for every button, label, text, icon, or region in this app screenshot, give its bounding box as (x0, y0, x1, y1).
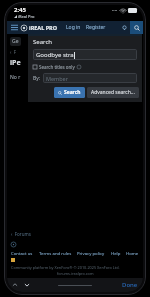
staticText: Search (64, 89, 81, 96)
button[interactable]: ‹ Forums (11, 231, 31, 237)
staticText: Advanced search... (91, 89, 135, 96)
button[interactable]: Home (126, 250, 139, 256)
button[interactable]: Ge (12, 38, 19, 45)
staticText: No r (10, 74, 21, 81)
button[interactable]: Search (130, 21, 143, 34)
button[interactable]: Search titles only (33, 64, 81, 70)
staticText: Ge (12, 38, 19, 45)
button[interactable]: Terms and rules (39, 250, 72, 256)
button[interactable]: Contact us (11, 250, 33, 256)
staticText: Community platform by XenForo® © 2010-20… (11, 265, 120, 270)
button[interactable]: Register (86, 24, 106, 31)
staticText: iREAL PRO (29, 24, 58, 31)
staticText: Member (46, 75, 68, 82)
staticText: 2:45 (14, 6, 26, 14)
button[interactable]: Help (111, 250, 121, 256)
button[interactable]: Log in (66, 24, 81, 31)
staticText: ‹ F (10, 49, 17, 55)
button[interactable]: Goodbye stra (33, 49, 137, 60)
staticText: ···· (112, 7, 118, 14)
button[interactable]: Notifications (119, 21, 130, 34)
button[interactable]: Advanced search... (87, 87, 139, 98)
button[interactable]: Previous field (11, 281, 19, 289)
button[interactable]: Privacy policy (77, 250, 105, 256)
staticText: By: (33, 75, 41, 82)
staticText: Search (33, 38, 52, 46)
button[interactable]: Member (43, 73, 137, 83)
button[interactable]: Next field (23, 281, 31, 289)
staticText: Search titles only (39, 64, 75, 70)
staticText: iPe (10, 58, 21, 68)
button[interactable]: Menu (7, 21, 21, 34)
button[interactable]: Done (122, 281, 138, 289)
button[interactable]: iREAL PRO (21, 24, 58, 31)
button[interactable]: RSS (11, 242, 16, 247)
button[interactable]: forums.irealpro.com (57, 271, 94, 276)
staticText: iReal Pro (18, 14, 35, 19)
button[interactable]: Search (54, 87, 85, 98)
staticText: Goodbye stra (36, 51, 74, 59)
